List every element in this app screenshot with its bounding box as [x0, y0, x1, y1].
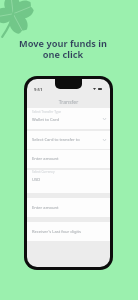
staticText: 9:51 [34, 87, 43, 93]
staticText: Receiver's Last four digits [32, 229, 81, 235]
staticText: Enter amount [32, 156, 59, 162]
button[interactable]: Select Card to transfer to [27, 131, 110, 149]
staticText: Enter amount [32, 205, 59, 211]
staticText: Wallet to Card [32, 117, 60, 123]
button[interactable]: Enter amount [27, 198, 110, 217]
button[interactable]: Receiver's Last four digits [27, 222, 110, 241]
staticText: Select Transfer Type [32, 110, 62, 114]
staticText: USD [32, 177, 41, 183]
staticText: Select Card to transfer to [32, 137, 80, 143]
staticText: Select Currency [32, 170, 55, 174]
button[interactable]: Enter amount [27, 150, 110, 168]
staticText: Transfer [27, 99, 110, 106]
button[interactable]: Select Transfer Type [27, 108, 110, 129]
button[interactable]: Select Currency [27, 170, 110, 193]
staticText: Move your funds in one click [19, 37, 107, 61]
